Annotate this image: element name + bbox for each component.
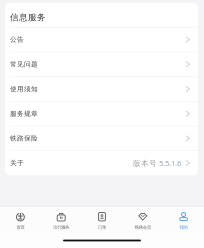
button[interactable]: 铁路会员 — [122, 207, 163, 233]
staticText: 出行服务 — [53, 224, 69, 230]
staticText: 关于 — [10, 159, 24, 167]
staticText: 服务规章 — [10, 109, 38, 118]
button[interactable]: 出行服务 — [41, 207, 82, 233]
staticText: 公告 — [10, 35, 24, 44]
staticText: 常见问题 — [10, 60, 38, 68]
button[interactable]: 订单 — [82, 207, 122, 233]
staticText: 使用须知 — [10, 85, 38, 93]
button[interactable]: 我的 — [163, 207, 204, 233]
button[interactable]: 使用须知 — [5, 77, 198, 101]
button[interactable]: 首页 — [0, 207, 41, 233]
staticText: 首页 — [16, 224, 24, 230]
staticText: 我的 — [180, 224, 188, 230]
button[interactable]: 服务规章 — [5, 102, 198, 126]
button[interactable]: 公告 — [5, 27, 198, 52]
button[interactable]: 铁路保险 — [5, 126, 198, 150]
staticText: 版本号 5.5.1.6 — [133, 158, 181, 168]
staticText: 订单 — [98, 224, 106, 230]
button[interactable]: 关于 — [5, 151, 198, 175]
button[interactable]: 常见问题 — [5, 52, 198, 76]
staticText: 铁路会员 — [135, 224, 151, 230]
staticText: 铁路保险 — [10, 134, 38, 143]
staticText: 信息服务 — [10, 12, 46, 23]
